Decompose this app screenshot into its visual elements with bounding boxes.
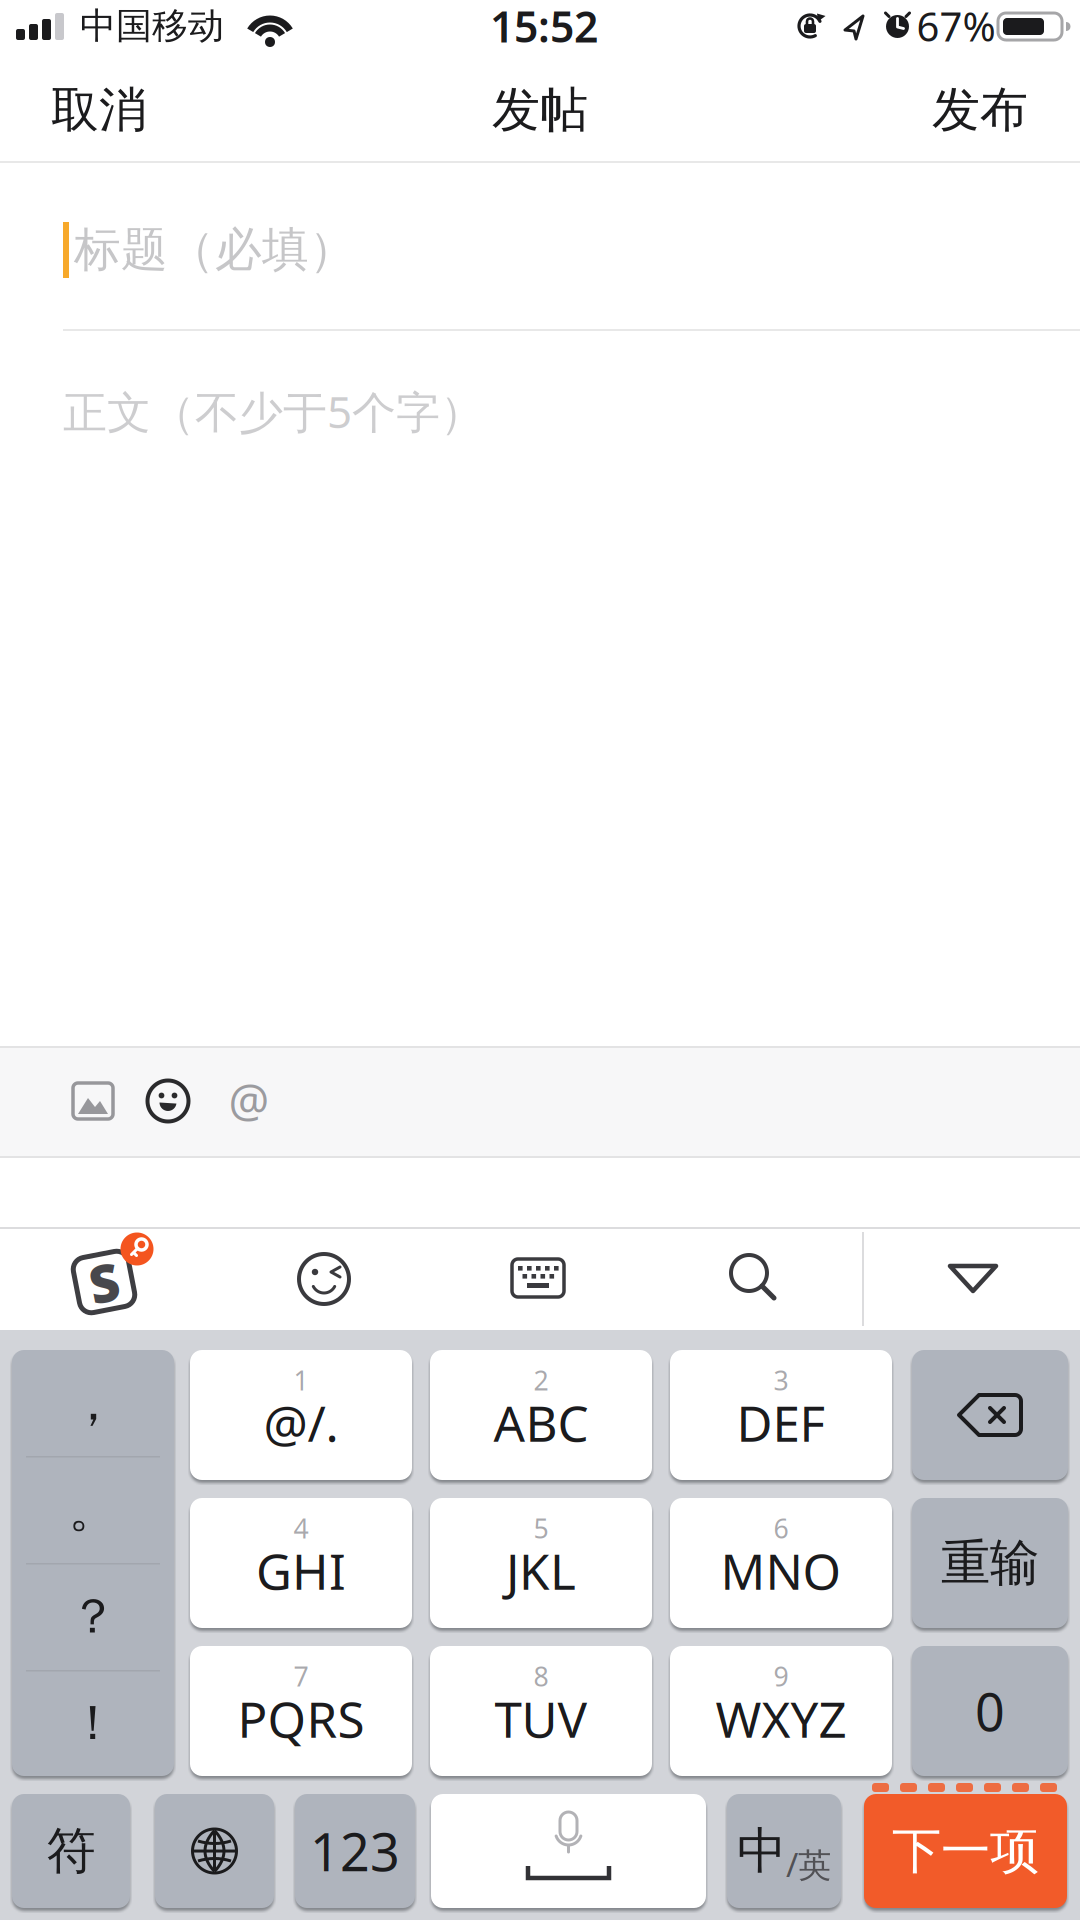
button[interactable]: 收起键盘 [947, 1263, 999, 1295]
staticText: ABC [493, 1390, 588, 1455]
button[interactable]: MNO [670, 1498, 892, 1628]
staticText: 发布 [932, 80, 1028, 139]
staticText: 8 [533, 1658, 548, 1694]
staticText: 中国移动 [80, 4, 224, 48]
button[interactable]: 0 [912, 1646, 1068, 1776]
button[interactable]: ABC [430, 1350, 652, 1480]
button[interactable]: WXYZ [670, 1646, 892, 1776]
button[interactable]: 搜狗输入法 [66, 1244, 142, 1320]
button[interactable]: TUV [430, 1646, 652, 1776]
staticText: 3 [773, 1362, 788, 1398]
button[interactable]: 空格 [431, 1794, 706, 1908]
staticText: 123 [310, 1816, 400, 1886]
button[interactable]: 插入图片 [71, 1081, 115, 1121]
button[interactable]: 删除 [912, 1350, 1068, 1480]
staticText: 9 [773, 1658, 788, 1694]
staticText: TUV [494, 1686, 587, 1751]
staticText: @ [228, 1070, 269, 1130]
staticText: GHI [256, 1538, 346, 1603]
staticText: ， [68, 1373, 117, 1433]
button[interactable]: 重输 [912, 1498, 1068, 1628]
button[interactable]: 切换输入法 [155, 1794, 274, 1908]
staticText: 15:52 [490, 0, 598, 54]
staticText: PQRS [237, 1686, 364, 1751]
button[interactable]: 键盘 [510, 1257, 566, 1299]
staticText: 5 [533, 1510, 548, 1546]
staticText: 正文（不少于5个字） [63, 382, 484, 440]
staticText: ！ [69, 1693, 117, 1752]
button[interactable]: DEF [670, 1350, 892, 1480]
staticText: 4 [293, 1510, 308, 1546]
staticText: 1 [293, 1362, 308, 1398]
staticText: S [89, 1247, 119, 1317]
button[interactable]: 表情 [299, 1254, 349, 1304]
staticText: /英 [786, 1842, 831, 1886]
staticText: 。 [68, 1479, 117, 1540]
button[interactable]: 符号 [12, 1794, 130, 1908]
button[interactable]: 取消 [51, 80, 147, 139]
button[interactable]: JKL [430, 1498, 652, 1628]
button[interactable]: 下一项 [864, 1794, 1067, 1908]
button[interactable]: 数字 [295, 1794, 415, 1908]
button[interactable]: 发布 [932, 80, 1028, 139]
button[interactable]: GHI [190, 1498, 412, 1628]
staticText: 中 [737, 1821, 786, 1881]
staticText: 重输 [941, 1533, 1039, 1593]
staticText: JKL [506, 1538, 576, 1603]
staticText: 67% [916, 0, 995, 52]
button[interactable]: PQRS [190, 1646, 412, 1776]
staticText: MNO [720, 1538, 841, 1603]
button[interactable]: 提到用户 [228, 1070, 269, 1130]
staticText: 取消 [51, 80, 147, 139]
button[interactable]: @/. [190, 1350, 412, 1480]
staticText: WXYZ [715, 1686, 846, 1751]
staticText: DEF [736, 1390, 825, 1455]
staticText: 2 [533, 1362, 548, 1398]
staticText: 发帖 [492, 80, 588, 139]
staticText: 7 [293, 1658, 308, 1694]
staticText: 6 [773, 1510, 788, 1546]
staticText: 符 [46, 1821, 95, 1881]
button[interactable]: 插入表情 [147, 1080, 188, 1121]
button[interactable]: 搜索 [729, 1253, 777, 1301]
staticText: 标题（必填） [74, 221, 356, 278]
staticText: 0 [975, 1676, 1005, 1746]
staticText: ？ [69, 1587, 117, 1646]
staticText: @/. [263, 1390, 338, 1455]
button[interactable]: 标点 [12, 1350, 174, 1776]
staticText: 下一项 [892, 1821, 1039, 1881]
button[interactable]: 中英切换 [727, 1794, 841, 1908]
